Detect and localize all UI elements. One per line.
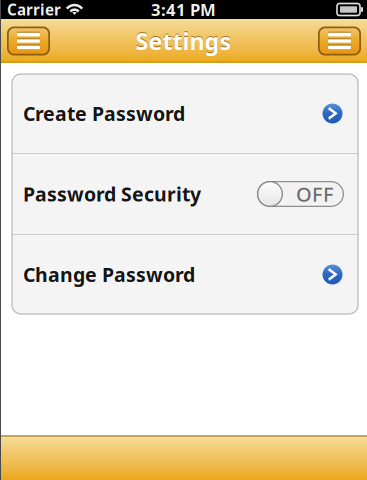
staticText: 3:41 PM	[151, 0, 216, 21]
staticText: Settings	[135, 25, 231, 57]
staticText: OFF	[296, 180, 334, 208]
staticText: Settings	[135, 24, 231, 56]
staticText: Password Security	[23, 181, 201, 207]
button[interactable]: Menu	[7, 26, 50, 55]
button[interactable]: Create Password	[12, 74, 358, 153]
staticText: Change Password	[23, 261, 195, 288]
button[interactable]: Menu	[318, 26, 361, 55]
staticText: Carrier	[7, 0, 61, 20]
staticText: Create Password	[23, 100, 185, 127]
button[interactable]: Change Password	[12, 235, 358, 314]
button[interactable]: Password Security, off	[257, 181, 344, 207]
